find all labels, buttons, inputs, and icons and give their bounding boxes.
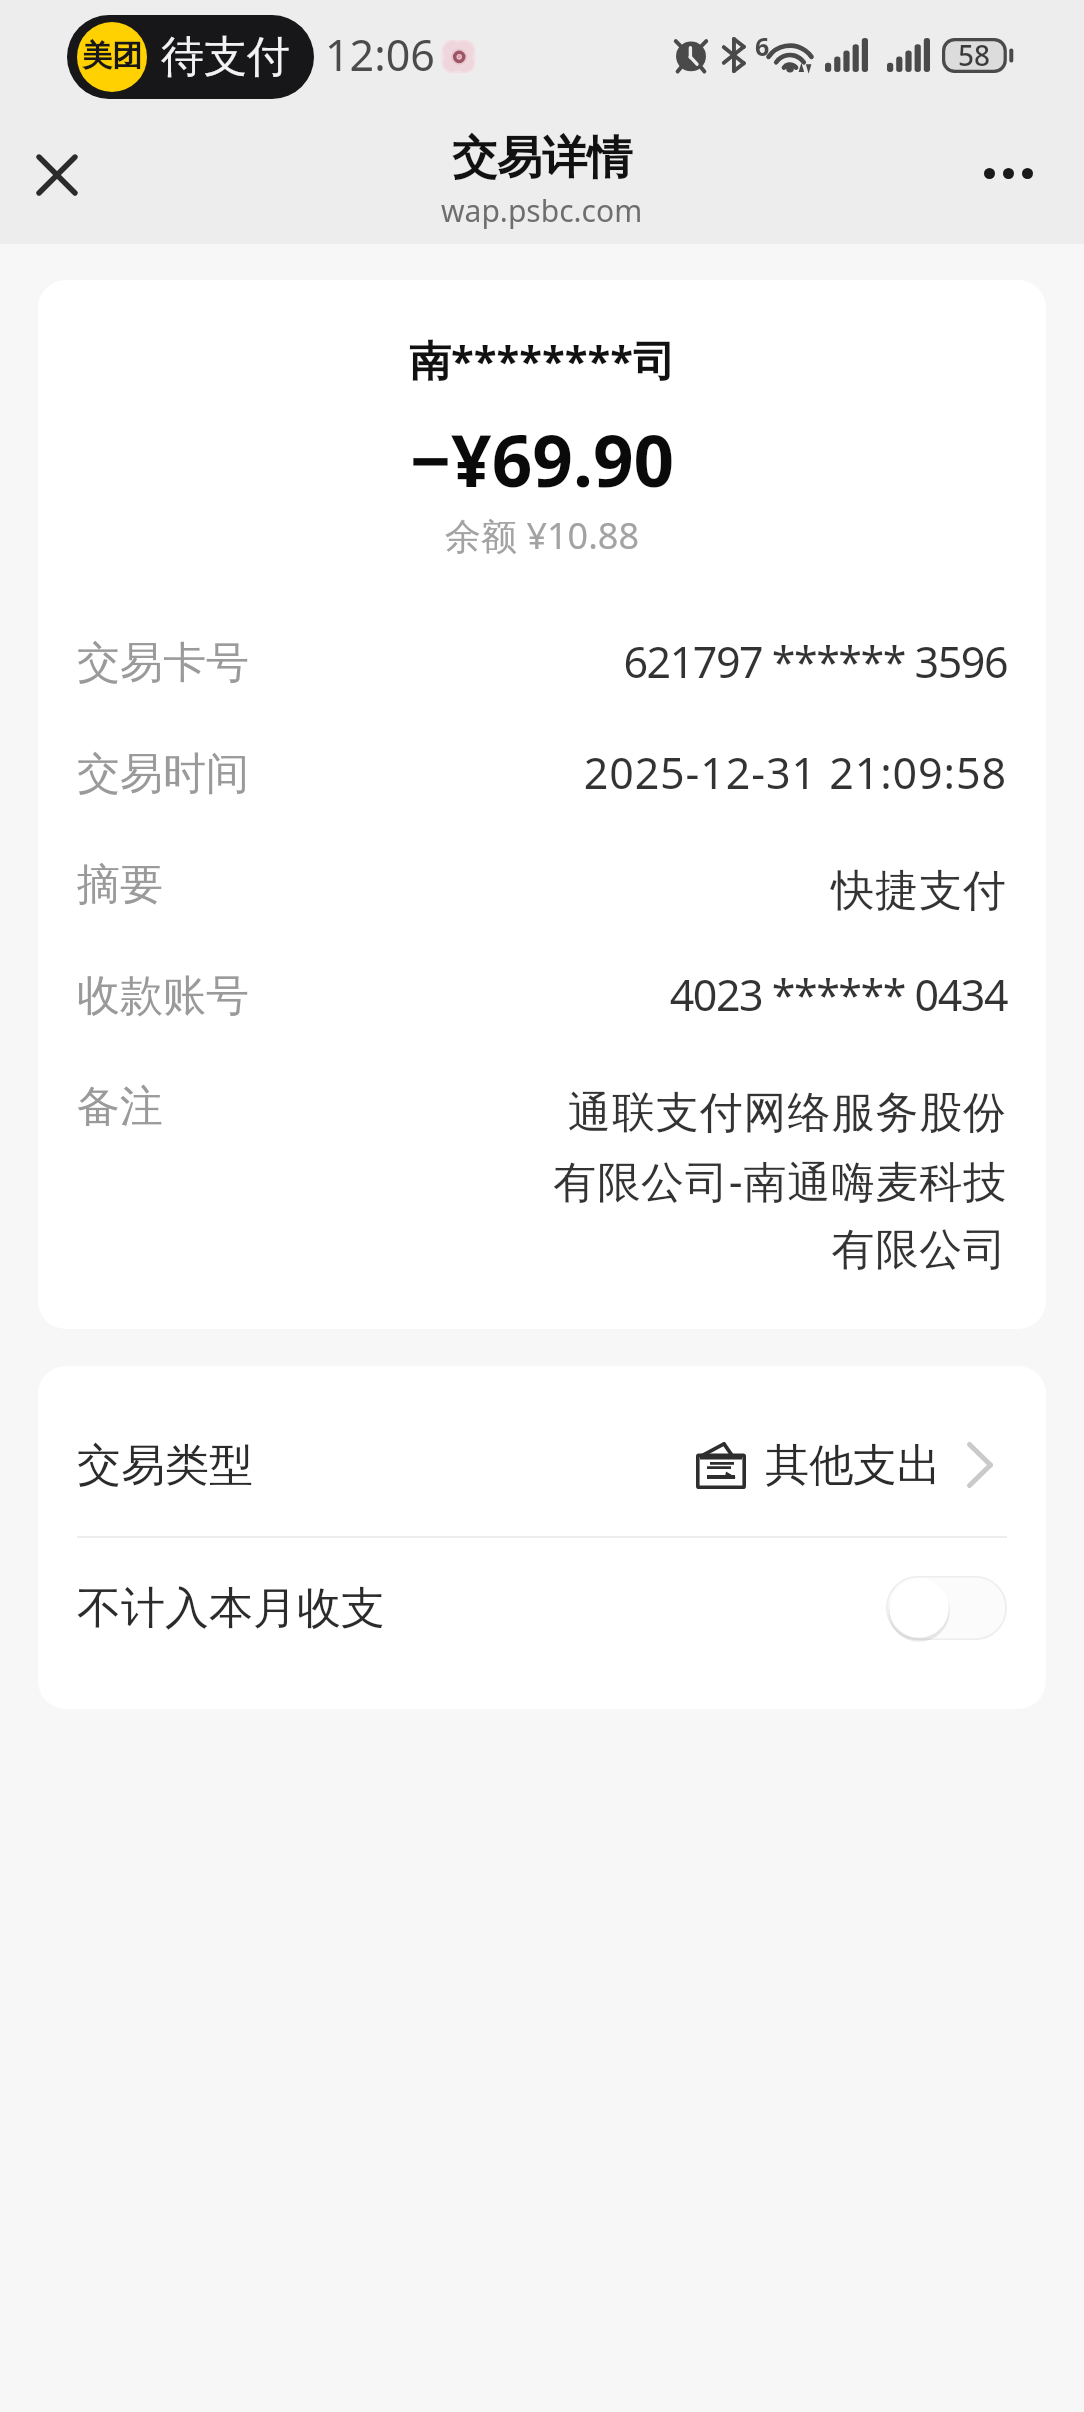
staticText: 待支付 (161, 30, 290, 84)
staticText: 12:06 (325, 25, 435, 84)
staticText: 621797 ****** 3596 (535, 632, 1007, 691)
button[interactable]: More options (968, 133, 1049, 214)
staticText: 4023 ****** 0434 (535, 965, 1007, 1024)
staticText: 收款账号 (77, 969, 317, 1023)
staticText: −¥69.90 (38, 411, 1046, 508)
button[interactable]: Toggle exclude from monthly total (886, 1576, 1007, 1640)
staticText: wap.psbc.com (441, 190, 643, 231)
staticText: 摘要 (77, 858, 317, 912)
staticText: 不计入本月收支 (77, 1581, 385, 1636)
staticText: 备注 (77, 1080, 317, 1134)
staticText: 余额 ¥10.88 (38, 511, 1046, 560)
staticText: 快捷支付 (535, 864, 1007, 918)
staticText: 2025-12-31 21:09:58 (535, 743, 1007, 802)
staticText: 通联支付网络服务股份有限公司-南通嗨麦科技有限公司 (535, 1086, 1007, 1277)
staticText: 交易卡号 (77, 636, 317, 690)
staticText: 其他支出 (765, 1438, 941, 1493)
button[interactable]: 美团 (67, 15, 314, 99)
staticText: 58 (958, 36, 991, 74)
staticText: 南********司 (38, 331, 1046, 388)
staticText: 交易详情 (452, 130, 632, 187)
button[interactable]: 交易类型 (38, 1394, 1046, 1536)
button[interactable]: 不计入本月收支 (38, 1538, 1046, 1678)
staticText: 交易时间 (77, 747, 317, 801)
button[interactable]: Close (16, 134, 97, 215)
staticText: 6 (755, 29, 770, 63)
staticText: 交易类型 (77, 1438, 253, 1493)
staticText: 美团 (82, 37, 142, 75)
